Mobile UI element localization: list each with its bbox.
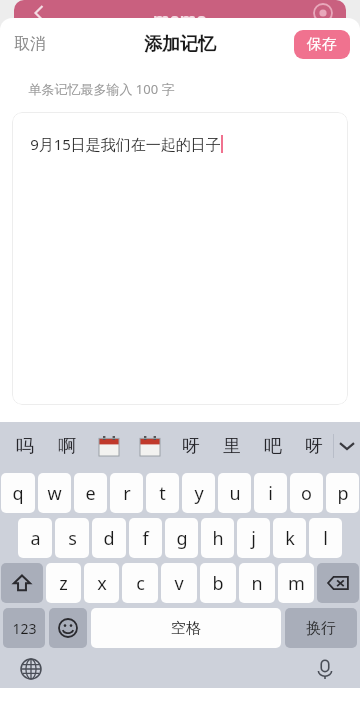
button[interactable]: 9月15日是我们在一起的日子 [12,112,348,405]
staticText: o [301,481,312,506]
button[interactable]: c [122,563,158,603]
button[interactable]: 吗 [4,422,46,470]
staticText: a [30,526,41,551]
staticText: z [59,571,68,596]
button[interactable]: e [74,473,107,513]
button[interactable]: z [46,563,81,603]
button[interactable]: g [165,518,198,558]
staticText: q [12,481,24,506]
button[interactable]: q [1,473,35,513]
staticText: l [323,526,328,551]
staticText: 123 [12,619,37,638]
staticText: i [268,481,273,506]
staticText: u [229,481,241,506]
button[interactable]: m [278,563,314,603]
button[interactable]: Backspace [317,563,359,603]
button[interactable]: p [326,473,359,513]
staticText: 单条记忆最多输入 100 字 [28,80,175,98]
button[interactable]: 呀 [170,422,211,470]
button[interactable]: h [201,518,234,558]
staticText: b [212,571,224,596]
button[interactable]: y [182,473,215,513]
staticText: 里 [223,435,241,458]
staticText: j [251,526,256,551]
staticText: 呀 [182,435,200,458]
button[interactable]: Expand suggestions [334,422,360,470]
staticText: w [47,481,62,506]
button[interactable]: l [309,518,342,558]
button[interactable]: s [55,518,89,558]
button[interactable]: u [218,473,251,513]
button[interactable]: w [38,473,71,513]
staticText: 换行 [306,619,336,638]
button[interactable]: f [129,518,162,558]
staticText: k [285,526,295,551]
button[interactable]: Change language [18,656,44,682]
button[interactable]: b [200,563,236,603]
staticText: 呀 [305,435,323,458]
button[interactable]: t [146,473,179,513]
staticText: c [136,571,145,596]
button[interactable] [88,422,129,470]
staticText: 啊 [58,435,76,458]
staticText: 保存 [307,35,337,54]
staticText: g [176,526,188,551]
staticText: p [337,481,349,506]
button[interactable]: 里 [211,422,252,470]
button[interactable]: v [161,563,197,603]
button[interactable]: Emoji [49,608,87,648]
button[interactable]: 取消 [0,26,60,62]
button[interactable]: 123 [3,608,45,648]
button[interactable]: r [110,473,143,513]
staticText: y [194,481,204,506]
staticText: 9月15日是我们在一起的日子 [30,134,221,154]
button[interactable]: n [239,563,275,603]
staticText: n [251,571,263,596]
button[interactable]: x [84,563,119,603]
staticText: d [103,526,115,551]
staticText: t [159,481,166,506]
button[interactable]: 保存 [294,30,350,59]
button[interactable]: 啊 [46,422,88,470]
button[interactable] [129,422,170,470]
staticText: 取消 [14,34,46,54]
button[interactable]: k [273,518,306,558]
staticText: f [142,526,149,551]
staticText: r [123,481,131,506]
button[interactable]: 空格 [91,608,281,648]
button[interactable]: j [237,518,270,558]
button[interactable]: a [18,518,52,558]
staticText: 添加记忆 [144,33,216,56]
button[interactable]: i [254,473,287,513]
staticText: m [288,571,305,596]
staticText: 吧 [264,435,282,458]
button[interactable]: o [290,473,323,513]
button[interactable]: Shift [1,563,43,603]
button[interactable]: 呀 [293,422,334,470]
staticText: memo [153,8,207,26]
button[interactable]: 吧 [252,422,293,470]
staticText: s [68,526,77,551]
button[interactable]: 换行 [285,608,357,648]
staticText: e [85,481,96,506]
staticText: 空格 [171,619,201,638]
staticText: h [212,526,224,551]
button[interactable]: Voice input [312,656,338,682]
staticText: 吗 [16,435,34,458]
staticText: x [97,571,107,596]
staticText: v [174,571,184,596]
button[interactable]: d [92,518,126,558]
